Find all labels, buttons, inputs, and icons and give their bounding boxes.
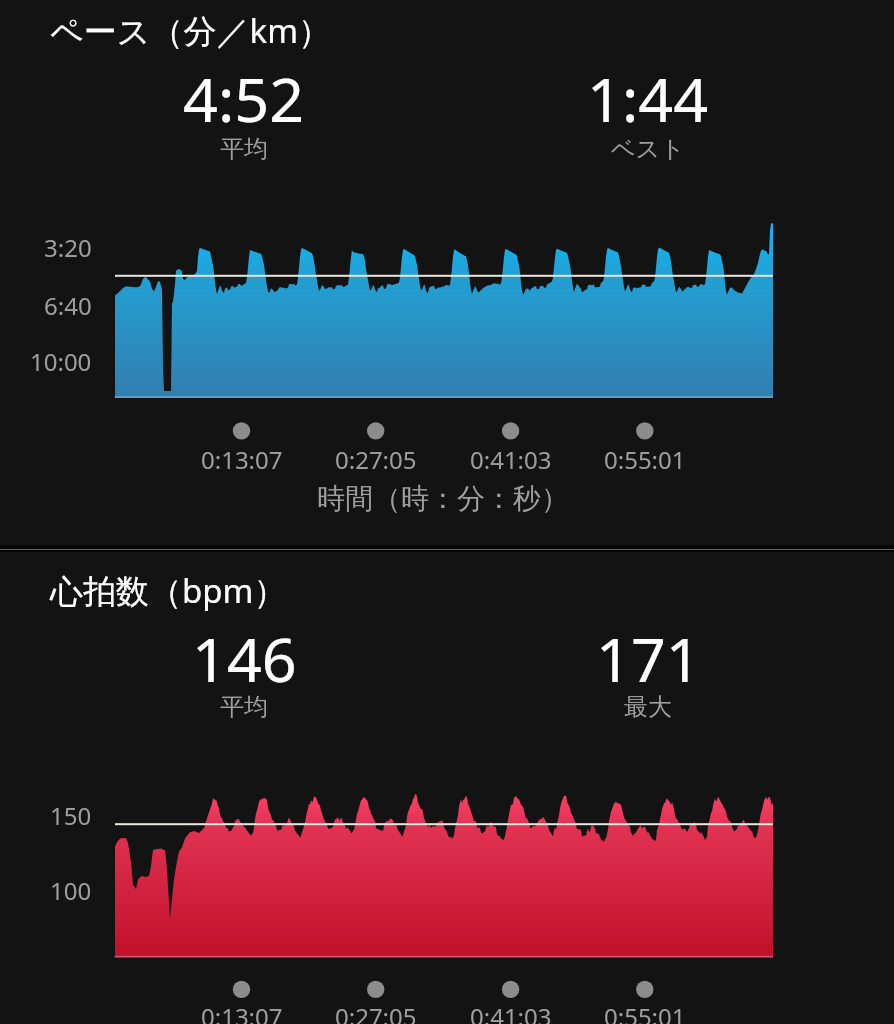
staticText: 100: [50, 874, 92, 907]
staticText: 0:27:05: [335, 1000, 417, 1024]
staticText: 146: [192, 617, 297, 700]
staticText: 心拍数（bpm）: [50, 568, 287, 613]
staticText: 4:52: [183, 57, 305, 140]
button[interactable]: 心拍数（bpm）のグラフ: [0, 550, 894, 1024]
staticText: 0:41:03: [470, 1000, 552, 1024]
staticText: 1:44: [587, 57, 709, 140]
staticText: 0:55:01: [604, 1000, 686, 1024]
staticText: 平均: [220, 692, 268, 722]
staticText: 0:55:01: [604, 443, 686, 476]
staticText: 0:27:05: [335, 443, 417, 476]
button[interactable]: ペース（分／km）のグラフ: [0, 0, 894, 548]
staticText: 平均: [220, 134, 268, 164]
staticText: ペース（分／km）: [50, 8, 332, 53]
staticText: 最大: [624, 692, 672, 722]
staticText: 時間（時：分：秒）: [317, 481, 569, 516]
staticText: 150: [50, 799, 92, 832]
staticText: 0:13:07: [201, 1000, 283, 1024]
staticText: 171: [596, 617, 701, 700]
staticText: 0:41:03: [470, 443, 552, 476]
staticText: 10:00: [30, 345, 92, 378]
staticText: 0:13:07: [201, 443, 283, 476]
staticText: 3:20: [44, 231, 92, 264]
staticText: 6:40: [44, 289, 92, 322]
staticText: ベスト: [611, 134, 685, 164]
